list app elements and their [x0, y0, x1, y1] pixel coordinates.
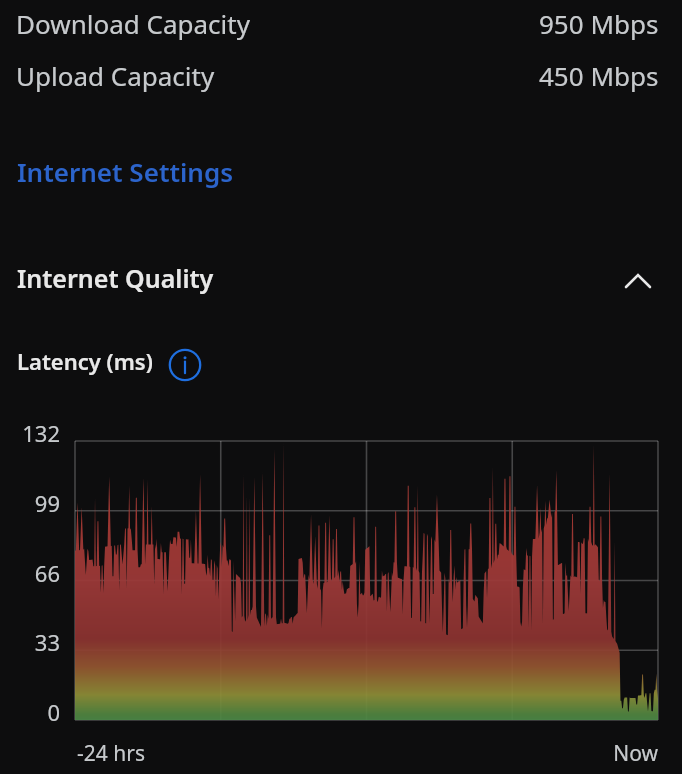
staticText: Now [500, 739, 658, 768]
staticText: 450 Mbps [539, 58, 659, 93]
staticText: -24 hrs [77, 739, 145, 768]
staticText: Download Capacity [16, 6, 250, 41]
button[interactable]: Internet Quality [0, 255, 682, 295]
staticText: Upload Capacity [16, 58, 215, 93]
staticText: Internet Quality [17, 261, 214, 295]
button[interactable]: Internet Settings [8, 146, 248, 197]
staticText: 950 Mbps [539, 6, 659, 41]
staticText: 132 [0, 418, 60, 448]
staticText: 33 [0, 627, 60, 657]
button[interactable]: Download Capacity [0, 6, 682, 41]
staticText: 0 [0, 697, 60, 727]
staticText: Latency (ms) [17, 346, 153, 376]
staticText: Internet Settings [17, 154, 234, 189]
staticText: 66 [0, 558, 60, 588]
button[interactable]: Latency information [165, 345, 205, 385]
other: Collapse Internet Quality [620, 255, 660, 295]
button[interactable]: Upload Capacity [0, 58, 682, 93]
staticText: 99 [0, 488, 60, 518]
